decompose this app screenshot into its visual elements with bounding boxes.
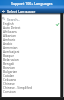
button[interactable]: Search... xyxy=(0,15,64,22)
button[interactable]: Afrikaans xyxy=(0,30,64,34)
staticText: Amharic xyxy=(3,38,16,42)
staticText: Albanian xyxy=(3,34,16,38)
staticText: Cebuano xyxy=(3,78,17,82)
button[interactable]: English xyxy=(0,22,64,26)
staticText: Bengali xyxy=(3,62,15,66)
staticText: Corsican xyxy=(3,90,16,94)
staticText: Afrikaans xyxy=(3,30,17,34)
button[interactable]: Azerbaijani xyxy=(0,50,64,54)
staticText: Azerbaijani xyxy=(3,50,20,54)
button[interactable]: Back xyxy=(0,9,7,13)
staticText: English xyxy=(3,22,14,26)
staticText: Arabic xyxy=(3,42,13,46)
button[interactable]: Bosnian xyxy=(0,66,64,70)
button[interactable]: Amharic xyxy=(0,38,64,42)
staticText: Catalan xyxy=(3,74,15,78)
button[interactable]: Chinese xyxy=(0,82,64,86)
button[interactable]: Armenian xyxy=(0,46,64,50)
button[interactable]: Cebuano xyxy=(0,78,64,82)
button[interactable]: Bengali xyxy=(0,62,64,66)
button[interactable]: Chinese - Simplified xyxy=(0,86,64,90)
button[interactable]: Basque xyxy=(0,54,64,58)
staticText: Basque xyxy=(3,54,14,58)
staticText: Search... xyxy=(7,17,21,21)
button[interactable]: Corsican xyxy=(0,90,64,94)
staticText: Bosnian xyxy=(3,66,15,70)
staticText: Armenian xyxy=(3,46,18,50)
button[interactable]: Arabic xyxy=(0,42,64,46)
staticText: Auto Detect xyxy=(3,26,21,30)
button[interactable]: Support 100+ Languages xyxy=(0,0,64,9)
staticText: Chinese - Simplified xyxy=(3,86,32,90)
button[interactable]: Bulgarian xyxy=(0,70,64,74)
button[interactable]: Catalan xyxy=(0,74,64,78)
staticText: Chinese xyxy=(3,82,15,86)
staticText: Support 100+ Languages xyxy=(11,1,53,6)
button[interactable]: Belarusian xyxy=(0,58,64,62)
staticText: Select Language xyxy=(7,9,36,13)
staticText: Belarusian xyxy=(3,58,19,62)
button[interactable]: Auto Detect xyxy=(0,26,64,30)
button[interactable]: Albanian xyxy=(0,34,64,38)
staticText: Bulgarian xyxy=(3,70,18,74)
